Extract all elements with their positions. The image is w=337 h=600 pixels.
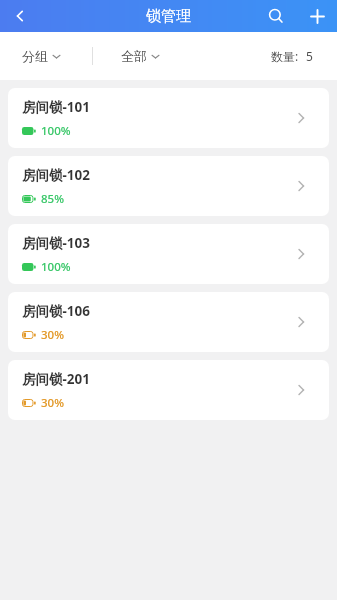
button[interactable]: Back (0, 0, 40, 32)
button[interactable]: 分组 (22, 48, 60, 64)
button[interactable]: 房间锁-101 (8, 88, 329, 148)
staticText: 房间锁-106 (22, 302, 90, 320)
staticText: 30% (41, 327, 64, 343)
staticText: 85% (41, 191, 64, 207)
button[interactable]: Search (255, 0, 297, 32)
staticText: 100% (41, 123, 71, 139)
staticText: 房间锁-201 (22, 370, 90, 388)
staticText: 分组 (22, 48, 48, 64)
staticText: 锁管理 (146, 7, 191, 26)
staticText: 100% (41, 259, 71, 275)
staticText: 数量: (271, 48, 299, 64)
staticText: 5 (306, 48, 313, 64)
button[interactable]: 房间锁-103 (8, 224, 329, 284)
staticText: 30% (41, 395, 64, 411)
staticText: 房间锁-102 (22, 166, 90, 184)
button[interactable]: 房间锁-106 (8, 292, 329, 352)
button[interactable]: 房间锁-201 (8, 360, 329, 420)
staticText: 全部 (121, 48, 147, 64)
button[interactable]: 全部 (121, 48, 159, 64)
button[interactable]: 房间锁-102 (8, 156, 329, 216)
staticText: 房间锁-103 (22, 234, 90, 252)
staticText: 房间锁-101 (22, 98, 90, 116)
button[interactable]: Add (297, 0, 337, 32)
